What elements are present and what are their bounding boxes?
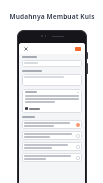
button[interactable]: Select answer bbox=[22, 142, 82, 151]
button[interactable] bbox=[22, 89, 82, 113]
other: Select answer bbox=[76, 156, 80, 160]
other: Select answer bbox=[76, 134, 80, 138]
button[interactable]: Select answer bbox=[22, 153, 82, 162]
button[interactable]: Close bbox=[22, 45, 29, 52]
staticText: Mudahnya Membuat Kuis bbox=[9, 12, 95, 21]
other: Select answer bbox=[76, 123, 80, 127]
button[interactable] bbox=[25, 106, 40, 111]
button[interactable]: Select answer bbox=[22, 120, 82, 129]
button[interactable] bbox=[22, 60, 82, 67]
button[interactable]: Select answer bbox=[22, 131, 82, 140]
button[interactable]: Publish bbox=[74, 45, 82, 53]
button[interactable] bbox=[22, 74, 82, 86]
other: Select answer bbox=[76, 145, 80, 149]
